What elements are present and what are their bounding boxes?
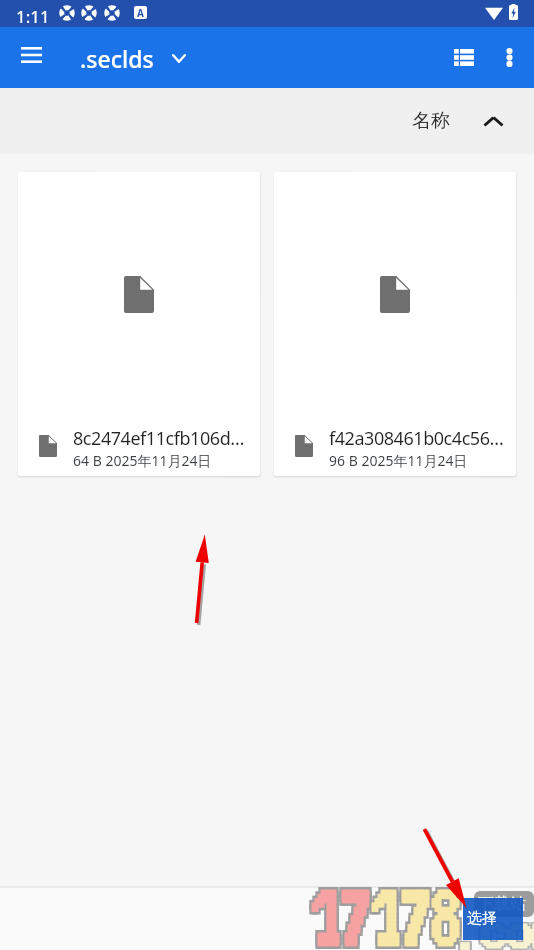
staticText: 选择 [467,909,497,928]
button[interactable]: More options [484,27,534,88]
staticText: 96 B 2025年11月24日 [329,451,468,470]
button[interactable]: 名称 [0,88,534,154]
staticText: 下载站 [478,894,526,914]
button[interactable]: 选择 [463,898,523,940]
staticText: A [137,6,144,19]
button[interactable]: f42a308461b0c4c56… [274,172,516,476]
button[interactable]: Change folder [158,41,200,75]
button[interactable]: Switch to list view [438,27,490,88]
button[interactable]: Navigation menu [3,27,59,83]
staticText: 名称 [412,109,450,133]
button[interactable]: 8c2474ef11cfb106d… [18,172,260,476]
staticText: 8c2474ef11cfb106d… [73,426,245,451]
staticText: 1:11 [16,5,50,28]
staticText: f42a308461b0c4c56… [329,426,504,451]
staticText: 64 B 2025年11月24日 [73,451,212,470]
staticText: .seclds [80,43,154,74]
